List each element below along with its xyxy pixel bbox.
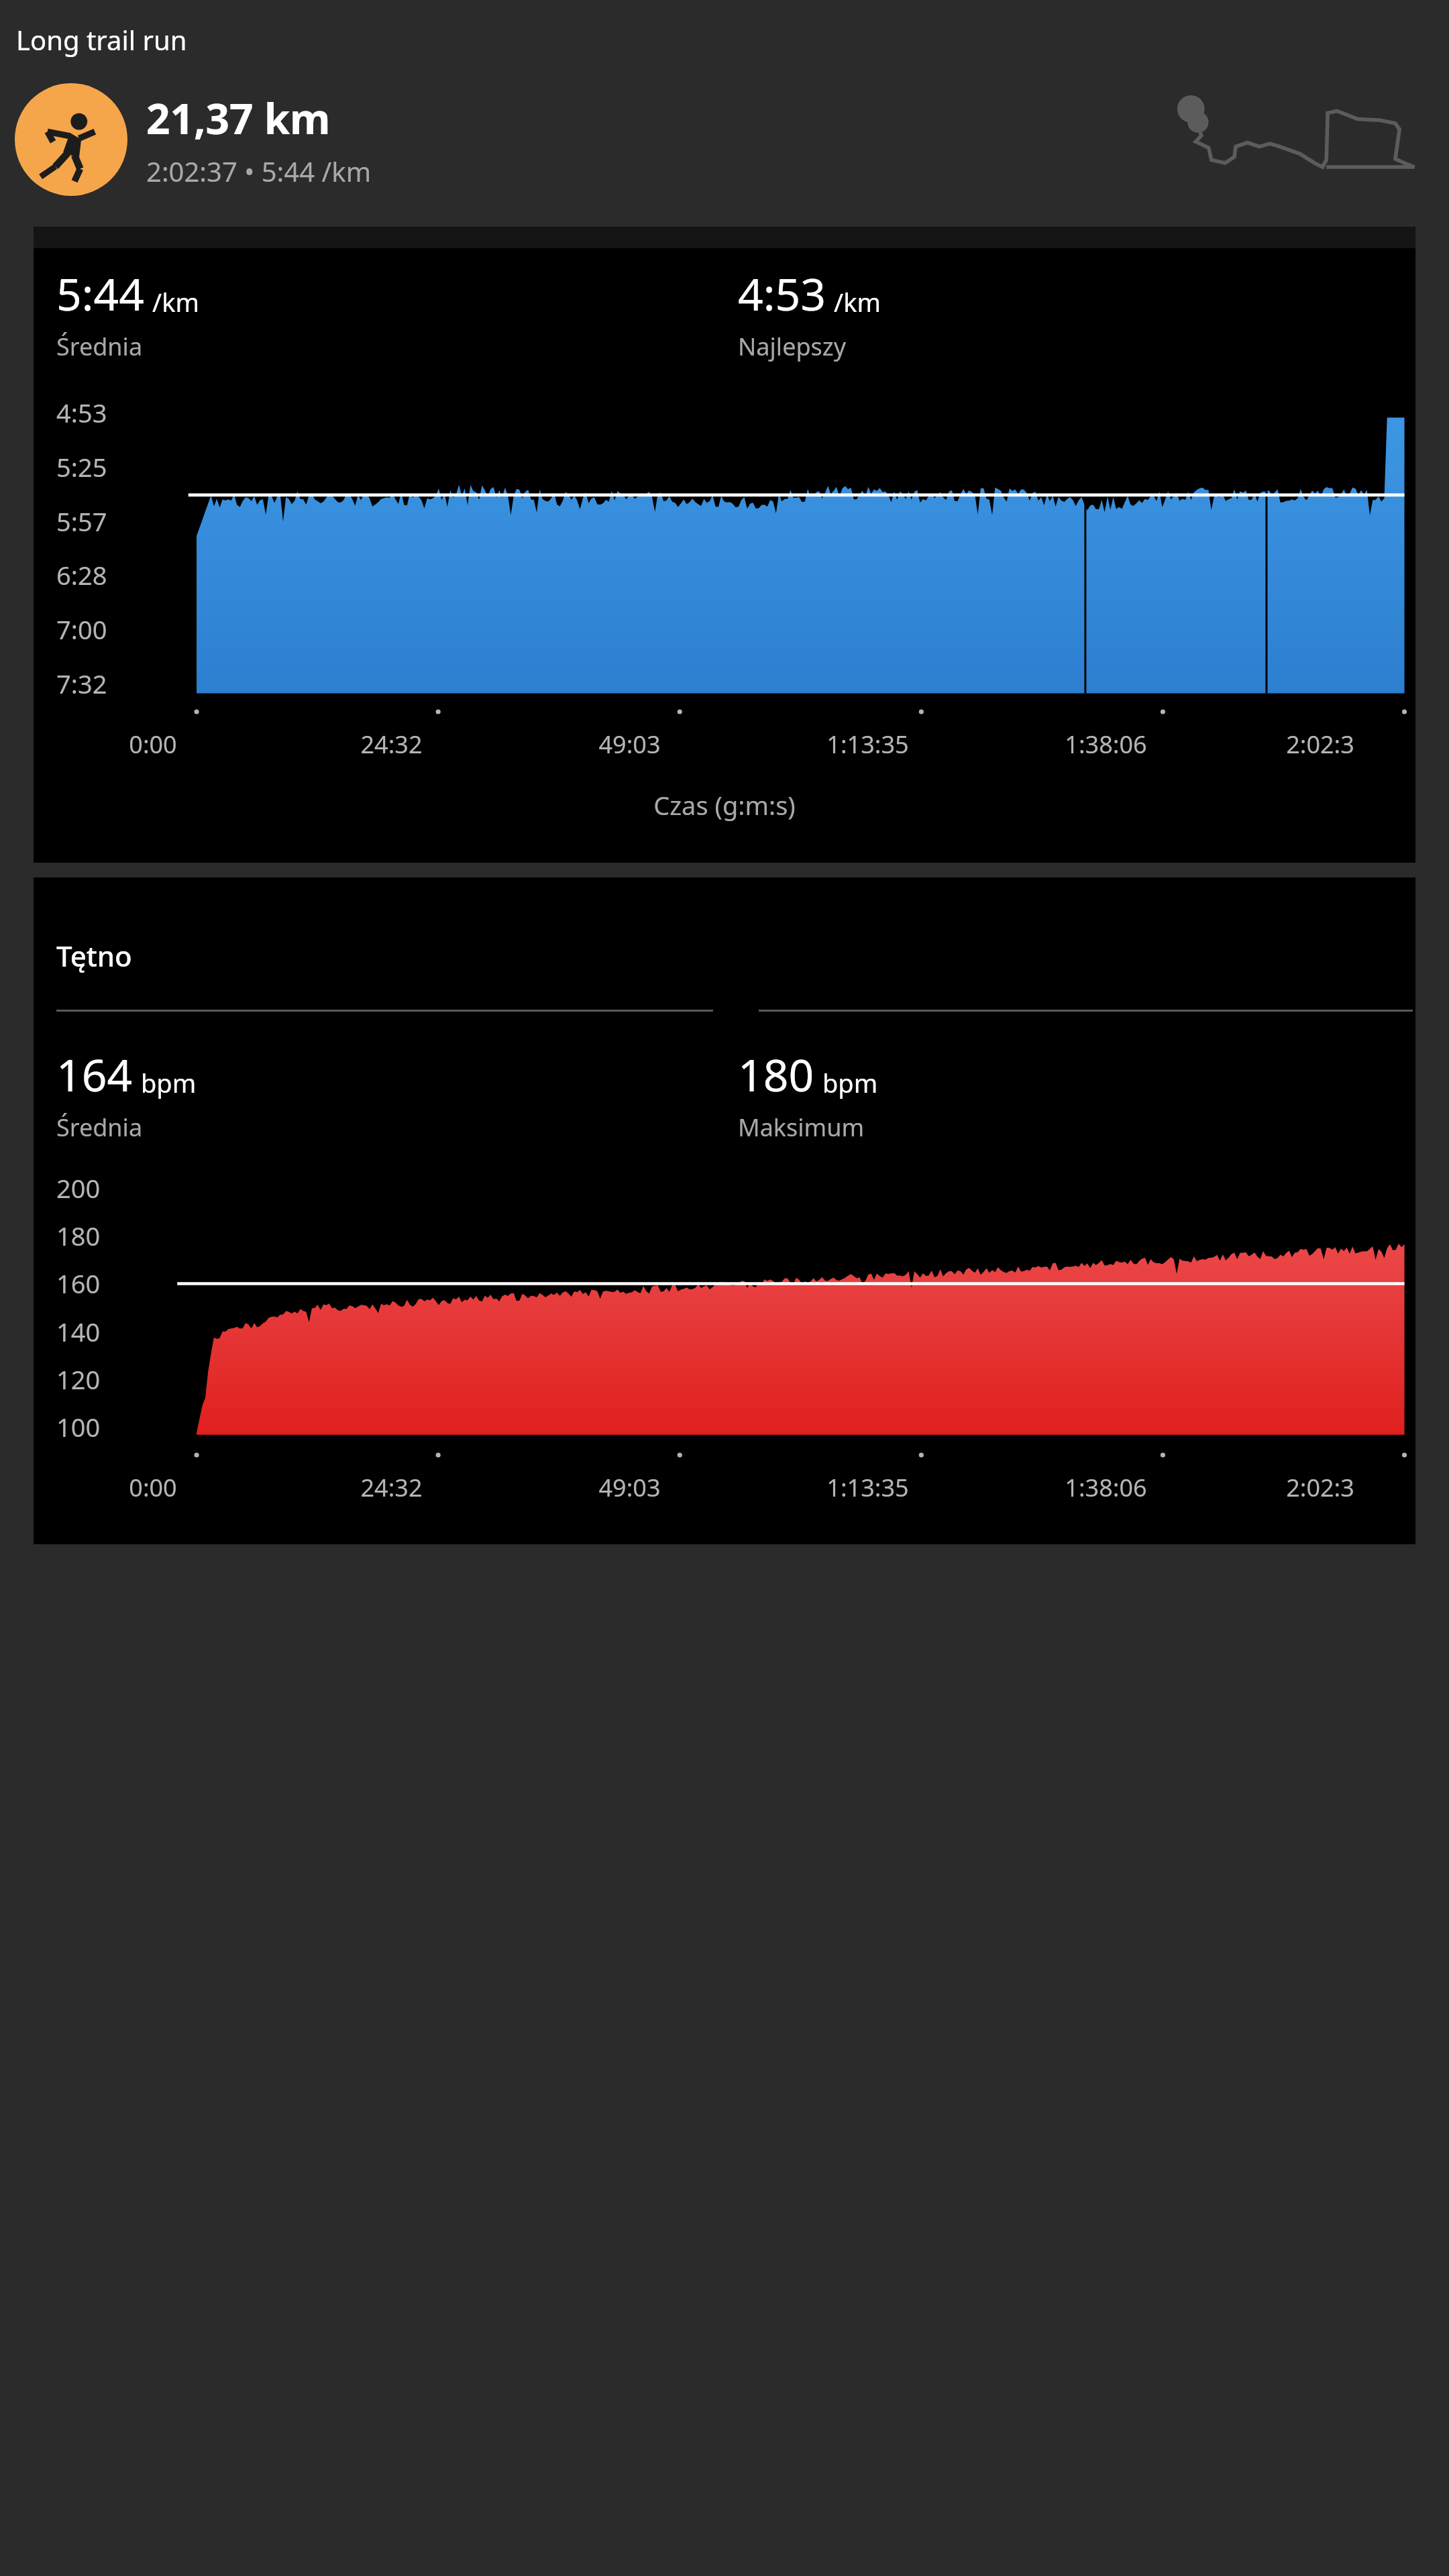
- button[interactable]: 21,37 km: [0, 75, 1449, 204]
- staticText: 0:00: [34, 1471, 272, 1504]
- staticText: 120: [56, 1362, 101, 1397]
- staticText: 2:02:37 • 5:44 /km: [146, 153, 372, 189]
- staticText: 100: [56, 1409, 101, 1444]
- staticText: 0:00: [34, 728, 272, 761]
- staticText: 24:32: [272, 728, 511, 761]
- staticText: Tętno: [56, 936, 132, 975]
- staticText: 140: [56, 1314, 101, 1349]
- staticText: /km: [834, 284, 881, 319]
- staticText: Maksimum: [738, 1111, 865, 1144]
- staticText: 24:32: [272, 1471, 511, 1504]
- staticText: 7:00: [56, 612, 107, 647]
- staticText: 1:38:06: [987, 1471, 1225, 1504]
- staticText: 200: [56, 1171, 101, 1205]
- staticText: 4:53: [56, 395, 107, 430]
- staticText: Najlepszy: [738, 330, 847, 363]
- staticText: 180: [738, 1044, 814, 1104]
- staticText: bpm: [822, 1065, 878, 1100]
- staticText: Long trail run: [16, 21, 187, 58]
- staticText: bpm: [141, 1065, 197, 1100]
- staticText: 2:02:3: [1225, 728, 1415, 761]
- staticText: Średnia: [56, 330, 143, 363]
- staticText: 1:13:35: [749, 728, 987, 761]
- staticText: 1:38:06: [987, 728, 1225, 761]
- staticText: Czas (g:m:s): [34, 788, 1415, 822]
- staticText: 5:44: [56, 263, 144, 323]
- staticText: Średnia: [56, 1111, 143, 1144]
- staticText: 6:28: [56, 557, 107, 592]
- staticText: /km: [152, 284, 199, 319]
- staticText: 5:57: [56, 504, 107, 539]
- staticText: 160: [56, 1266, 101, 1301]
- button[interactable]: Tętno: [34, 877, 1415, 1544]
- staticText: 180: [56, 1218, 101, 1253]
- button[interactable]: Route map: [1169, 89, 1432, 191]
- staticText: 21,37 km: [146, 90, 331, 146]
- staticText: 164: [56, 1044, 133, 1104]
- staticText: 49:03: [511, 1471, 749, 1504]
- staticText: 5:25: [56, 449, 107, 484]
- button[interactable]: 5:44: [34, 227, 1415, 863]
- staticText: 49:03: [511, 728, 749, 761]
- staticText: 4:53: [738, 263, 826, 323]
- staticText: 2:02:3: [1225, 1471, 1415, 1504]
- staticText: 1:13:35: [749, 1471, 987, 1504]
- staticText: 7:32: [56, 666, 107, 701]
